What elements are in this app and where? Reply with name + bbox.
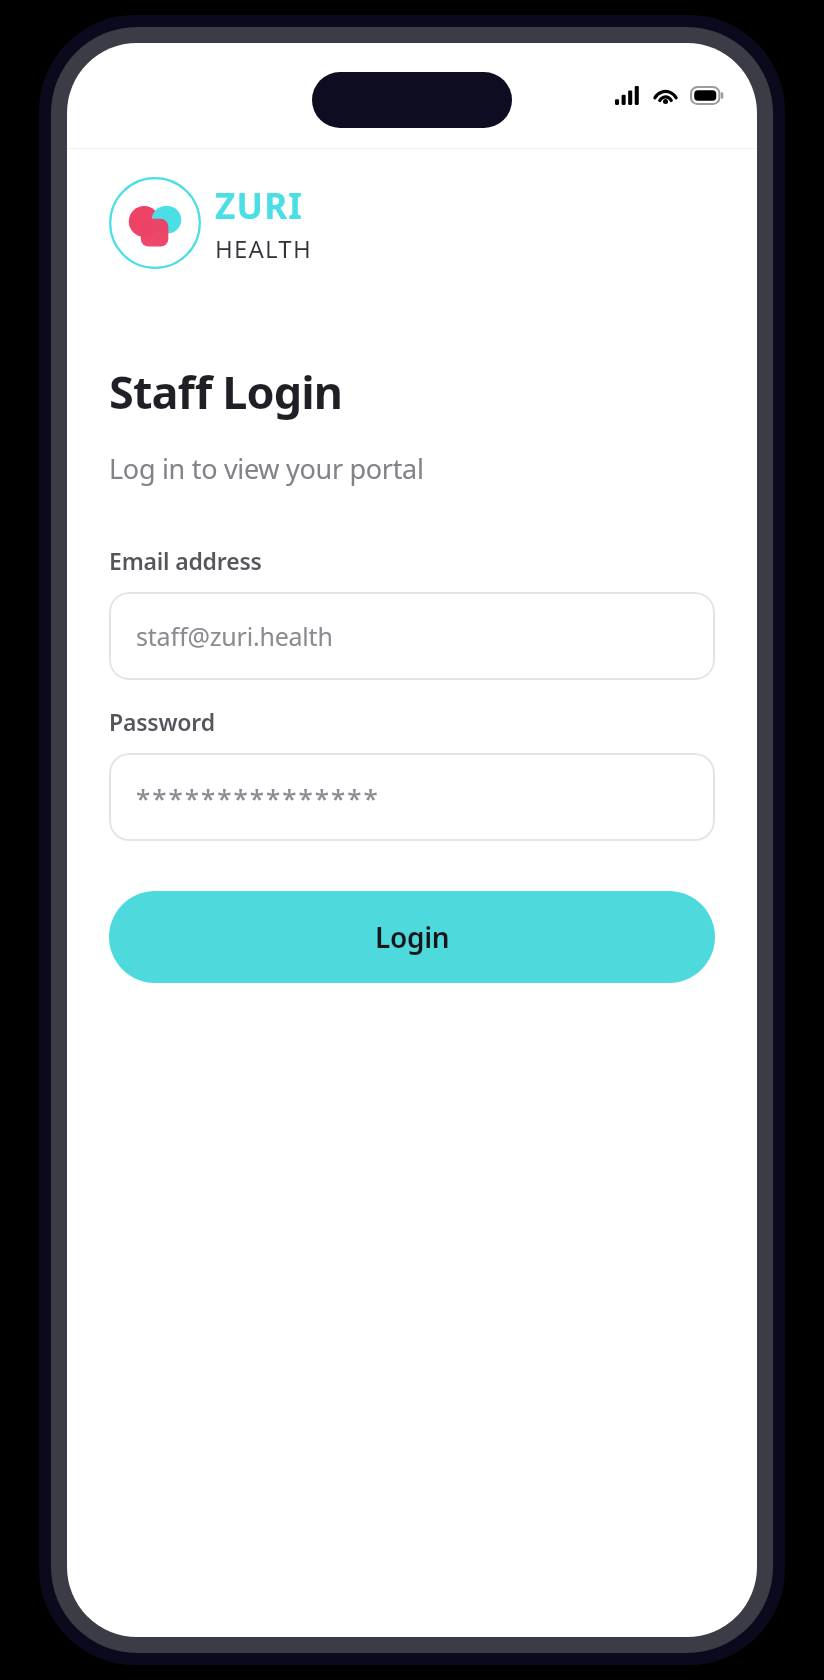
button[interactable]: Login [109, 891, 715, 983]
staticText: *************** [136, 780, 380, 815]
staticText: Login [375, 918, 450, 956]
staticText: Password [109, 706, 215, 737]
button[interactable]: staff@zuri.health [109, 592, 715, 680]
staticText: staff@zuri.health [136, 619, 333, 653]
staticText: Staff Login [109, 361, 343, 422]
staticText: HEALTH [215, 232, 312, 265]
staticText: Email address [109, 545, 262, 576]
staticText: ZURI [215, 182, 304, 230]
staticText: Log in to view your portal [109, 450, 424, 487]
button[interactable]: *************** [109, 753, 715, 841]
